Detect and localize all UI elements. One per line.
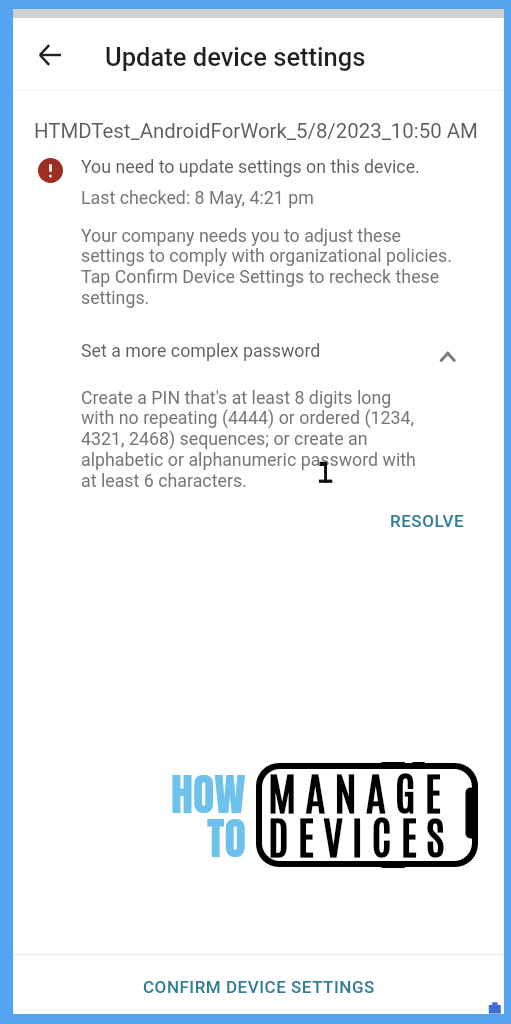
staticText: You need to update settings on this devi… [81,156,420,177]
button[interactable] [13,327,504,377]
staticText: TO [207,805,246,871]
button[interactable] [373,502,485,546]
other: Collapse [428,341,456,369]
staticText: CONFIRM DEVICE SETTINGS [143,977,375,997]
staticText: HOW [171,761,246,827]
staticText: Update device settings [105,42,366,72]
button[interactable] [13,955,504,1014]
staticText: MANAGE [268,761,451,819]
staticText: DEVICES [268,805,454,863]
staticText: Set a more complex password [81,340,321,361]
staticText: Your company needs you to adjust these s… [81,225,452,309]
staticText: Create a PIN that's at least 8 digits lo… [81,387,416,492]
staticText: RESOLVE [390,511,465,531]
staticText: HTMDTest_AndroidForWork_5/8/2023_10:50 A… [34,119,478,143]
staticText: Last checked: 8 May, 4:21 pm [81,187,314,208]
button[interactable]: Back [26,28,72,74]
